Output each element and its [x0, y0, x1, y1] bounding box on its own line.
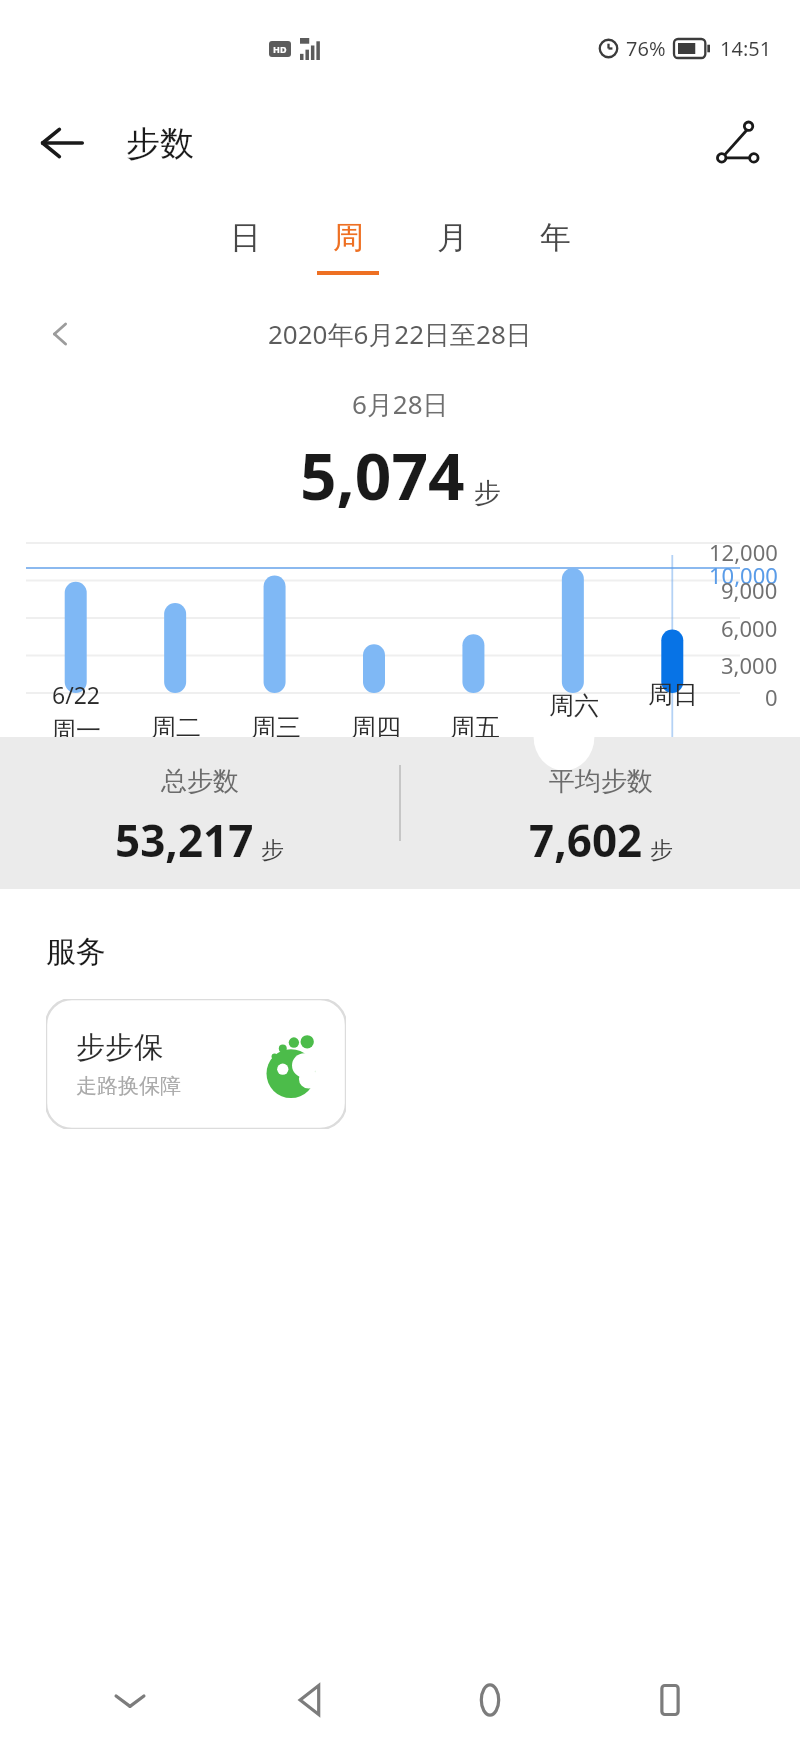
staticText: 周日 — [648, 679, 698, 710]
staticText: 步 — [261, 836, 284, 865]
staticText: 服务 — [46, 933, 106, 971]
staticText: 53,217 — [115, 810, 254, 870]
staticText: 步数 — [126, 122, 194, 165]
staticText: 76% — [626, 35, 666, 62]
button[interactable]: 周 — [308, 218, 388, 275]
staticText: 周三 — [251, 712, 301, 737]
staticText: 平均步数 — [549, 765, 653, 798]
staticText: 0 — [765, 682, 778, 712]
button[interactable]: Share — [706, 111, 770, 175]
staticText: 12,000 — [709, 537, 778, 567]
staticText: 周 — [333, 218, 364, 257]
staticText: 6,000 — [721, 613, 778, 643]
staticText: 月 — [437, 218, 468, 257]
staticText: 周五 — [450, 712, 500, 737]
staticText: 7,602 — [529, 810, 643, 870]
button[interactable]: 日 — [205, 218, 285, 275]
button[interactable]: Back — [32, 113, 92, 173]
staticText: 周四 — [351, 712, 401, 737]
button[interactable]: 年 — [515, 218, 595, 275]
staticText: 周一 — [51, 715, 101, 737]
button[interactable]: Home — [440, 1650, 540, 1750]
staticText: 周二 — [151, 712, 201, 737]
button[interactable]: Back — [260, 1650, 360, 1750]
staticText: 步 — [474, 476, 501, 510]
staticText: 2020年6月22日至28日 — [268, 316, 532, 352]
button[interactable]: Previous week — [32, 306, 88, 362]
staticText: 3,000 — [721, 650, 778, 680]
staticText: 步 — [650, 836, 673, 865]
staticText: 周六 — [549, 690, 599, 721]
staticText: 5,074 — [300, 432, 465, 519]
button[interactable]: 步步保 — [46, 999, 346, 1129]
button[interactable]: 总步数 — [0, 765, 399, 870]
staticText: 10,000 — [709, 560, 778, 590]
staticText: 步步保 — [76, 1029, 163, 1066]
button[interactable]: 平均步数 — [401, 765, 800, 870]
staticText: 总步数 — [161, 765, 239, 798]
button[interactable]: 月 — [412, 218, 492, 275]
button[interactable]: Recents — [620, 1650, 720, 1750]
staticText: 9,000 — [721, 575, 778, 605]
staticText: 6月28日 — [352, 386, 449, 422]
staticText: 走路换保障 — [76, 1073, 181, 1099]
button[interactable]: Hide keyboard — [80, 1650, 180, 1750]
staticText: 年 — [540, 218, 571, 257]
staticText: 6/22 — [52, 679, 101, 710]
staticText: 日 — [230, 218, 261, 257]
staticText: 14:51 — [720, 35, 772, 62]
staticText: HD — [273, 43, 287, 55]
